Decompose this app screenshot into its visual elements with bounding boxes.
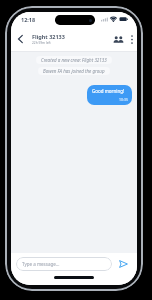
staticText: Created a new crew: Flight 32133 bbox=[41, 57, 107, 63]
staticText: Type a message... bbox=[22, 261, 60, 267]
button[interactable]: Type a message... bbox=[16, 257, 112, 271]
staticText: 10:35 bbox=[119, 97, 128, 102]
button[interactable] bbox=[117, 257, 130, 271]
staticText: 22h 59m left bbox=[32, 41, 51, 45]
button[interactable]: Flight 32133 bbox=[32, 33, 65, 45]
staticText: Bowen FA has joined the group bbox=[43, 68, 105, 74]
button[interactable]: Good morning! bbox=[87, 85, 132, 105]
button[interactable] bbox=[129, 31, 135, 47]
button[interactable] bbox=[11, 30, 29, 48]
staticText: Flight 32133 bbox=[32, 33, 65, 40]
button[interactable] bbox=[111, 31, 125, 47]
staticText: 12:18 bbox=[21, 16, 36, 23]
staticText: Good morning! bbox=[92, 88, 125, 94]
